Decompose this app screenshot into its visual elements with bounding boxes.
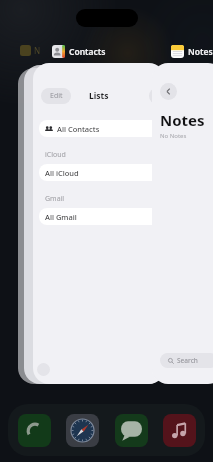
staticText: Contacts <box>69 46 106 58</box>
button[interactable]: Notes <box>170 44 213 59</box>
button[interactable] <box>18 68 158 384</box>
staticText: Edit <box>50 91 63 101</box>
button[interactable]: Contacts <box>51 44 107 59</box>
staticText: Search <box>177 356 198 365</box>
button[interactable]: Edit <box>33 63 165 384</box>
button[interactable]: All Gmail <box>39 208 165 225</box>
button[interactable]: Back <box>160 83 177 100</box>
button[interactable]: Add list <box>149 88 165 104</box>
staticText: Gmail <box>45 194 65 204</box>
staticText: N <box>34 45 41 56</box>
button[interactable]: All iCloud <box>39 164 165 181</box>
staticText: iCloud <box>45 150 66 160</box>
button[interactable]: Music <box>162 413 196 447</box>
staticText: Notes <box>188 46 213 58</box>
staticText: All iCloud <box>45 168 79 178</box>
button[interactable]: Phone <box>17 413 51 447</box>
button[interactable]: Safari <box>65 413 99 447</box>
button[interactable]: Edit <box>41 88 71 104</box>
staticText: All Contacts <box>57 124 100 134</box>
button[interactable]: Back <box>152 63 213 384</box>
staticText: All Gmail <box>45 212 77 222</box>
staticText: Notes <box>160 110 205 130</box>
button[interactable]: Messages <box>114 413 148 447</box>
button[interactable]: Search <box>160 353 213 368</box>
staticText: No Notes <box>160 132 187 140</box>
staticText: Lists <box>89 90 109 102</box>
button[interactable] <box>24 65 164 384</box>
button[interactable]: All Contacts <box>39 120 165 137</box>
button[interactable]: More <box>37 363 50 376</box>
